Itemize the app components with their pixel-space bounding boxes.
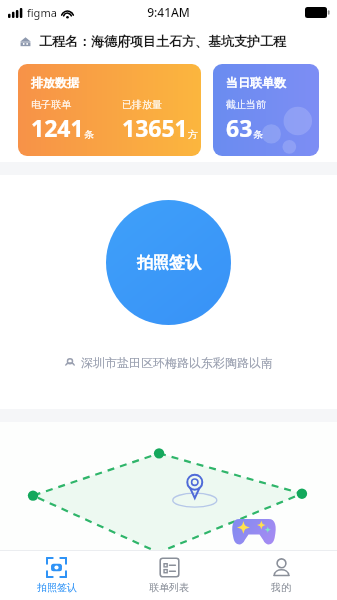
button[interactable]: 联单列表: [113, 551, 225, 600]
staticText: 拍照签认: [137, 253, 201, 273]
staticText: 条: [253, 128, 263, 141]
staticText: 深圳市盐田区环梅路以东彩陶路以南: [81, 355, 273, 370]
button[interactable]: 排放数据: [18, 64, 201, 156]
staticText: figma: [27, 5, 57, 20]
staticText: 条: [84, 128, 94, 141]
button[interactable]: 当日联单数: [213, 64, 319, 156]
staticText: 63: [226, 112, 253, 143]
staticText: 当日联单数: [226, 75, 286, 90]
staticText: 已排放量: [122, 98, 162, 111]
button[interactable]: 我的: [225, 551, 337, 600]
staticText: 方: [188, 128, 198, 141]
staticText: 9:41AM: [147, 4, 190, 20]
staticText: 工程名：海德府项目土石方、基坑支护工程: [39, 33, 286, 49]
staticText: 1241: [31, 112, 84, 143]
staticText: 截止当前: [226, 98, 266, 111]
button[interactable]: Game: [231, 516, 277, 546]
button[interactable]: 拍照签认: [0, 551, 113, 600]
staticText: 排放数据: [31, 75, 79, 90]
staticText: 我的: [271, 581, 291, 594]
staticText: 联单列表: [149, 581, 189, 594]
staticText: 13651: [122, 112, 188, 143]
button[interactable]: 拍照签认: [106, 200, 231, 325]
staticText: 电子联单: [31, 98, 71, 111]
staticText: 拍照签认: [37, 581, 77, 594]
